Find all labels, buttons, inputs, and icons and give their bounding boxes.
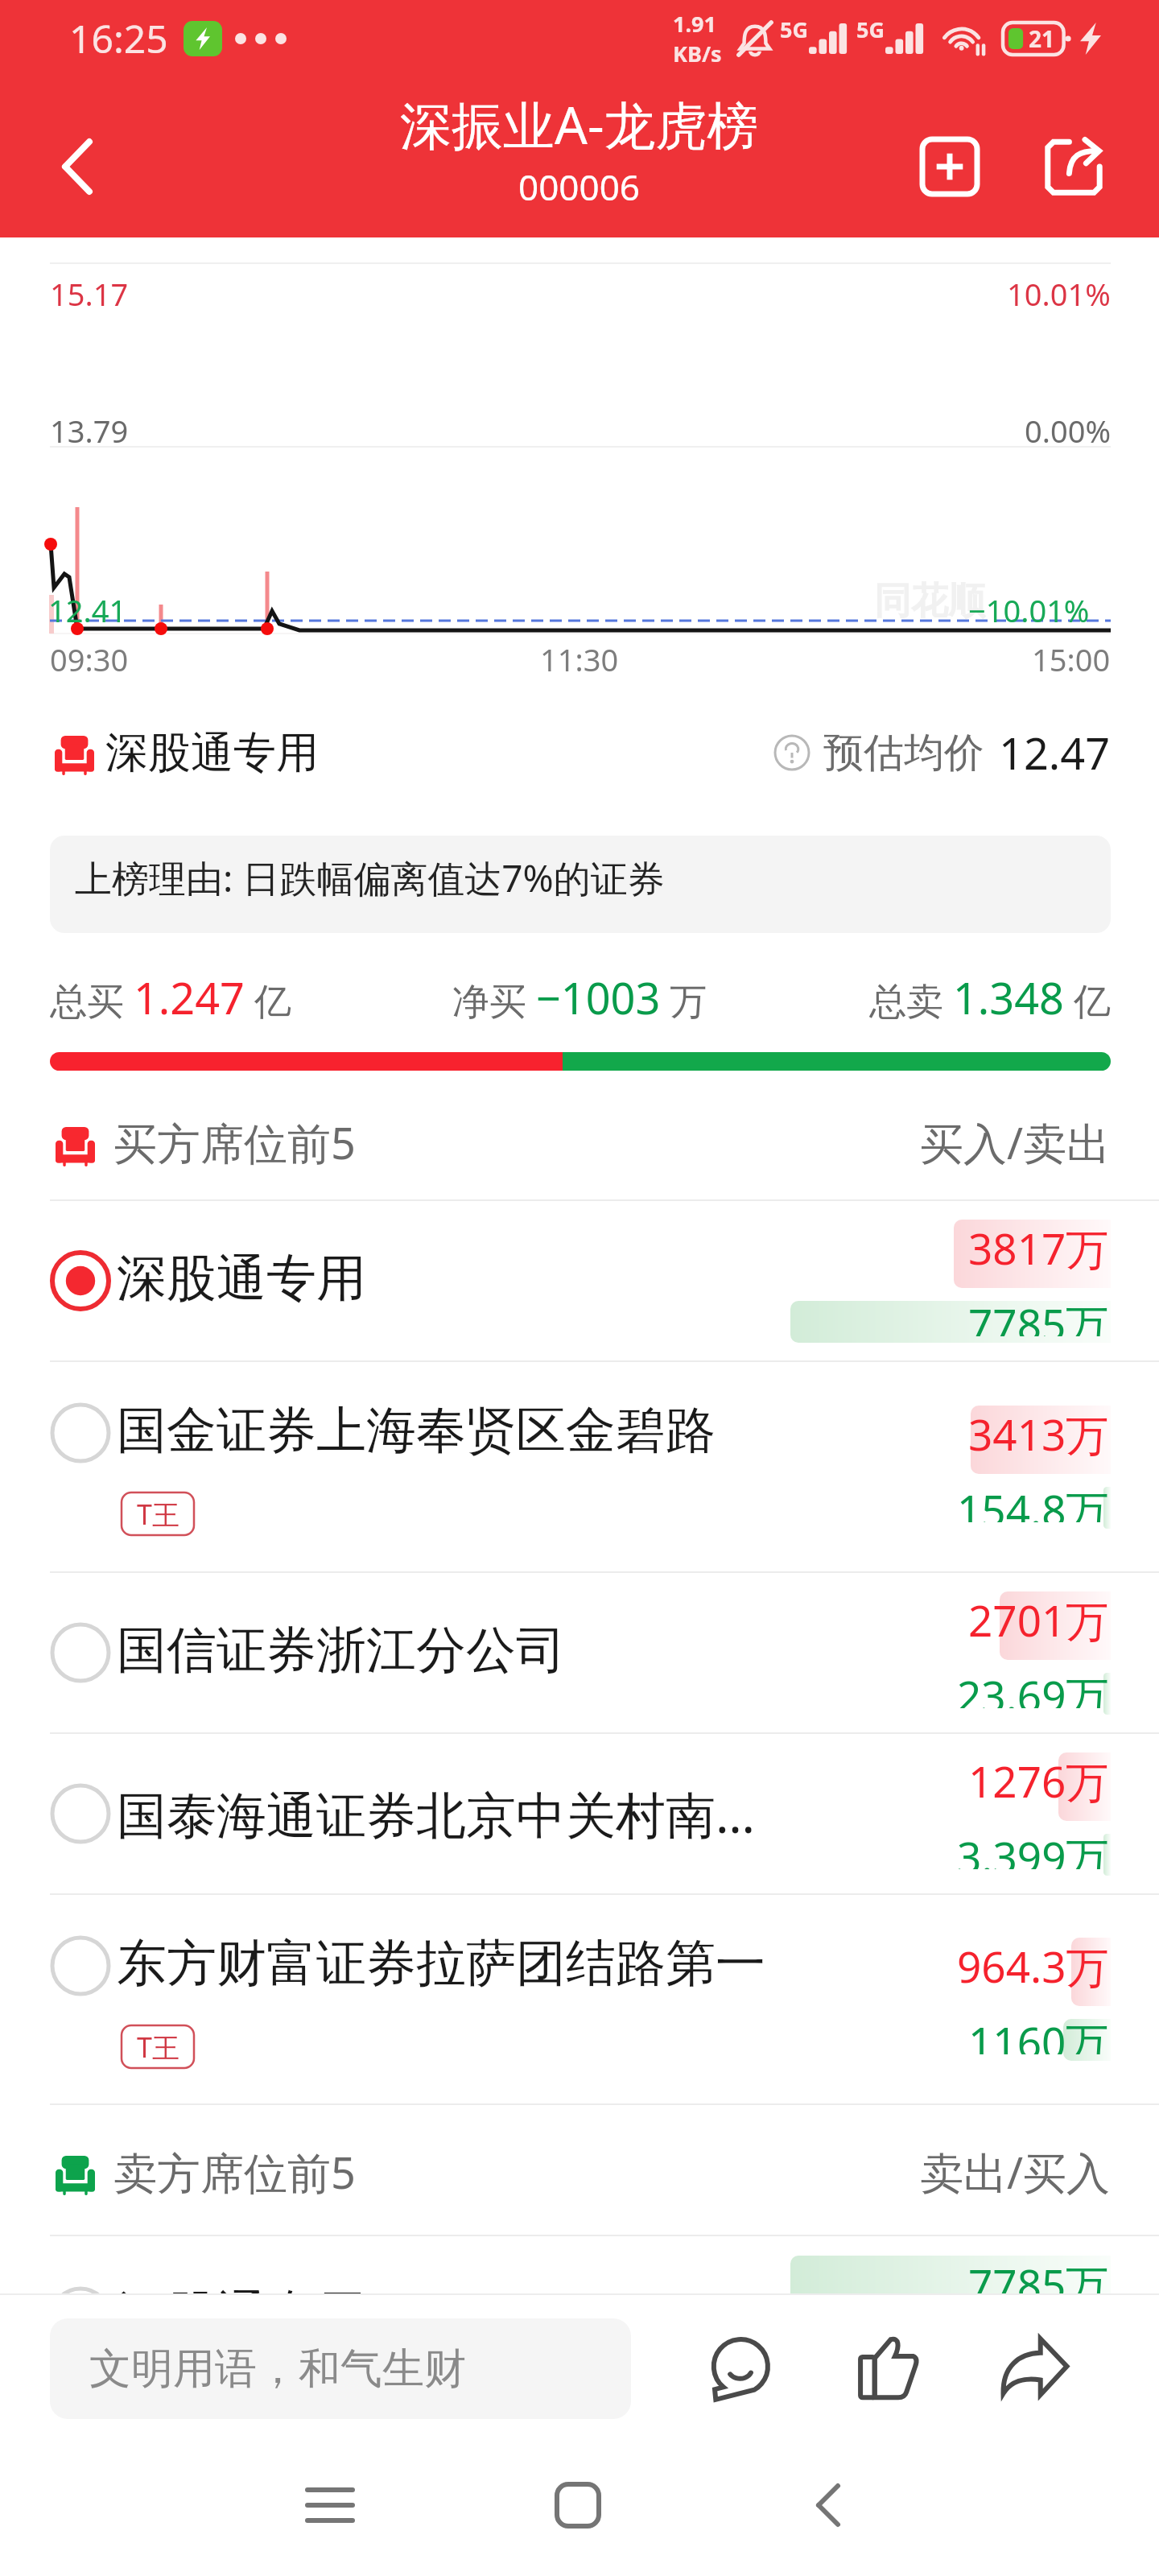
button[interactable]: 964.3万 bbox=[0, 1895, 1159, 2103]
button[interactable]: 7785万 bbox=[0, 2236, 1159, 2397]
staticText: 文明用语，和气生财 bbox=[89, 2343, 466, 2396]
button[interactable]: 上榜理由: 日跌幅偏离值达7%的证券 bbox=[50, 836, 1111, 933]
button[interactable]: Back bbox=[21, 110, 134, 223]
staticText: 11:30 bbox=[540, 638, 619, 680]
staticText: 总卖 1.348 亿 bbox=[869, 968, 1111, 1024]
button[interactable]: Share bbox=[1017, 110, 1130, 223]
staticText: 净买 −1003 万 bbox=[452, 968, 707, 1024]
button[interactable]: Recents bbox=[274, 2449, 386, 2562]
button[interactable]: 1276万 bbox=[0, 1734, 1159, 1893]
staticText: 3.399万 bbox=[957, 1827, 1109, 1869]
staticText: 上榜理由: 日跌幅偏离值达7%的证券 bbox=[75, 852, 665, 903]
staticText: 1160万 bbox=[968, 2013, 1109, 2054]
staticText: 同花顺 bbox=[874, 578, 985, 625]
staticText: 5G bbox=[780, 14, 808, 44]
staticText: 卖方席位前5 bbox=[113, 2142, 356, 2202]
staticText: 深振业A-龙虎榜 bbox=[400, 89, 759, 159]
staticText: 总买 1.247 亿 bbox=[50, 968, 291, 1024]
staticText: 154.8万 bbox=[957, 1480, 1109, 1522]
staticText: 卖出/买入 bbox=[920, 2142, 1111, 2202]
staticText: 国金证券上海奉贤区金碧路 bbox=[117, 1399, 716, 1462]
button[interactable]: Comment bbox=[678, 2309, 798, 2429]
staticText: 15.17 bbox=[50, 273, 129, 315]
staticText: 10.01% bbox=[1007, 273, 1111, 315]
button[interactable]: 买方席位前5 bbox=[0, 1082, 1159, 1199]
staticText: 深股通专用 bbox=[105, 726, 319, 780]
staticText: 3817万 bbox=[968, 2330, 1109, 2372]
staticText: KB/s bbox=[673, 39, 722, 68]
staticText: 15:00 bbox=[1032, 638, 1111, 680]
staticText: 23.69万 bbox=[957, 1666, 1109, 1708]
staticText: 21 bbox=[1029, 23, 1055, 54]
staticText: 000006 bbox=[518, 163, 641, 211]
staticText: 12.41 bbox=[48, 589, 127, 631]
staticText: 深股通专用 bbox=[117, 1247, 366, 1310]
staticText: 买方席位前5 bbox=[113, 1113, 356, 1172]
staticText: 深股通专用 bbox=[117, 2283, 366, 2346]
staticText: 1276万 bbox=[968, 1752, 1109, 1810]
button[interactable]: Like bbox=[826, 2309, 947, 2429]
staticText: 7785万 bbox=[968, 1294, 1109, 1336]
button[interactable]: 3817万 bbox=[0, 1201, 1159, 1360]
staticText: 3413万 bbox=[968, 1405, 1109, 1463]
staticText: 09:30 bbox=[50, 638, 129, 680]
button[interactable]: Share bbox=[975, 2309, 1095, 2429]
button[interactable]: 2701万 bbox=[0, 1573, 1159, 1732]
staticText: 2701万 bbox=[968, 1591, 1109, 1649]
staticText: 13.79 bbox=[50, 410, 129, 452]
staticText: 7785万 bbox=[968, 2255, 1109, 2313]
staticText: 预估均价 bbox=[823, 728, 984, 778]
staticText: T王 bbox=[137, 1496, 179, 1533]
button[interactable]: Back bbox=[772, 2449, 885, 2562]
staticText: 0.00% bbox=[1025, 410, 1111, 452]
button[interactable]: 文明用语，和气生财 bbox=[50, 2318, 631, 2419]
staticText: 12.47 bbox=[999, 723, 1111, 782]
staticText: 3817万 bbox=[968, 1219, 1109, 1277]
button[interactable]: 3413万 bbox=[0, 1362, 1159, 1571]
button[interactable]: Home bbox=[522, 2449, 634, 2562]
staticText: 国信证券浙江分公司 bbox=[117, 1619, 566, 1682]
staticText: 16:25 bbox=[69, 12, 168, 64]
staticText: 964.3万 bbox=[957, 1937, 1109, 1995]
staticText: 买入/卖出 bbox=[920, 1113, 1111, 1172]
staticText: 5G bbox=[856, 14, 885, 44]
staticText: 1.91 bbox=[673, 9, 716, 39]
staticText: 国泰海通证券北京中关村南… bbox=[117, 1780, 756, 1848]
button[interactable]: Add to watchlist bbox=[893, 110, 1006, 223]
staticText: −10.01% bbox=[968, 589, 1090, 631]
staticText: 东方财富证券拉萨团结路第一 bbox=[117, 1932, 765, 1995]
button[interactable]: 卖方席位前5 bbox=[0, 2105, 1159, 2235]
staticText: T王 bbox=[137, 2029, 179, 2066]
